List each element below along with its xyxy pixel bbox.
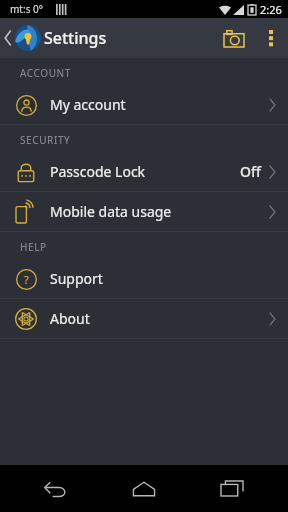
staticText: ?	[24, 272, 29, 287]
button[interactable]: Passcode Lock	[0, 152, 288, 191]
button[interactable]: Recent apps	[200, 465, 264, 512]
button[interactable]: About	[0, 299, 288, 338]
staticText: mt:s 0°	[10, 2, 44, 16]
staticText: ACCOUNT	[20, 66, 71, 80]
button[interactable]: Camera	[214, 18, 254, 58]
staticText: Mobile data usage	[50, 202, 269, 221]
button[interactable]: Mobile data usage	[0, 192, 288, 231]
button[interactable]: Navigate up	[0, 25, 47, 51]
staticText: Off	[240, 162, 261, 181]
button[interactable]: More options	[254, 18, 288, 58]
staticText: Support	[50, 269, 269, 288]
button[interactable]: Back	[24, 465, 88, 512]
button[interactable]: My account	[0, 85, 288, 124]
staticText: 2:26	[260, 2, 282, 17]
staticText: About	[50, 309, 269, 328]
staticText: HELP	[20, 240, 47, 254]
button[interactable]: ?	[0, 259, 288, 298]
staticText: Passcode Lock	[50, 162, 240, 181]
staticText: My account	[50, 95, 269, 114]
staticText: Settings	[44, 27, 107, 49]
button[interactable]: Home	[112, 465, 176, 512]
staticText: SECURITY	[20, 133, 71, 147]
